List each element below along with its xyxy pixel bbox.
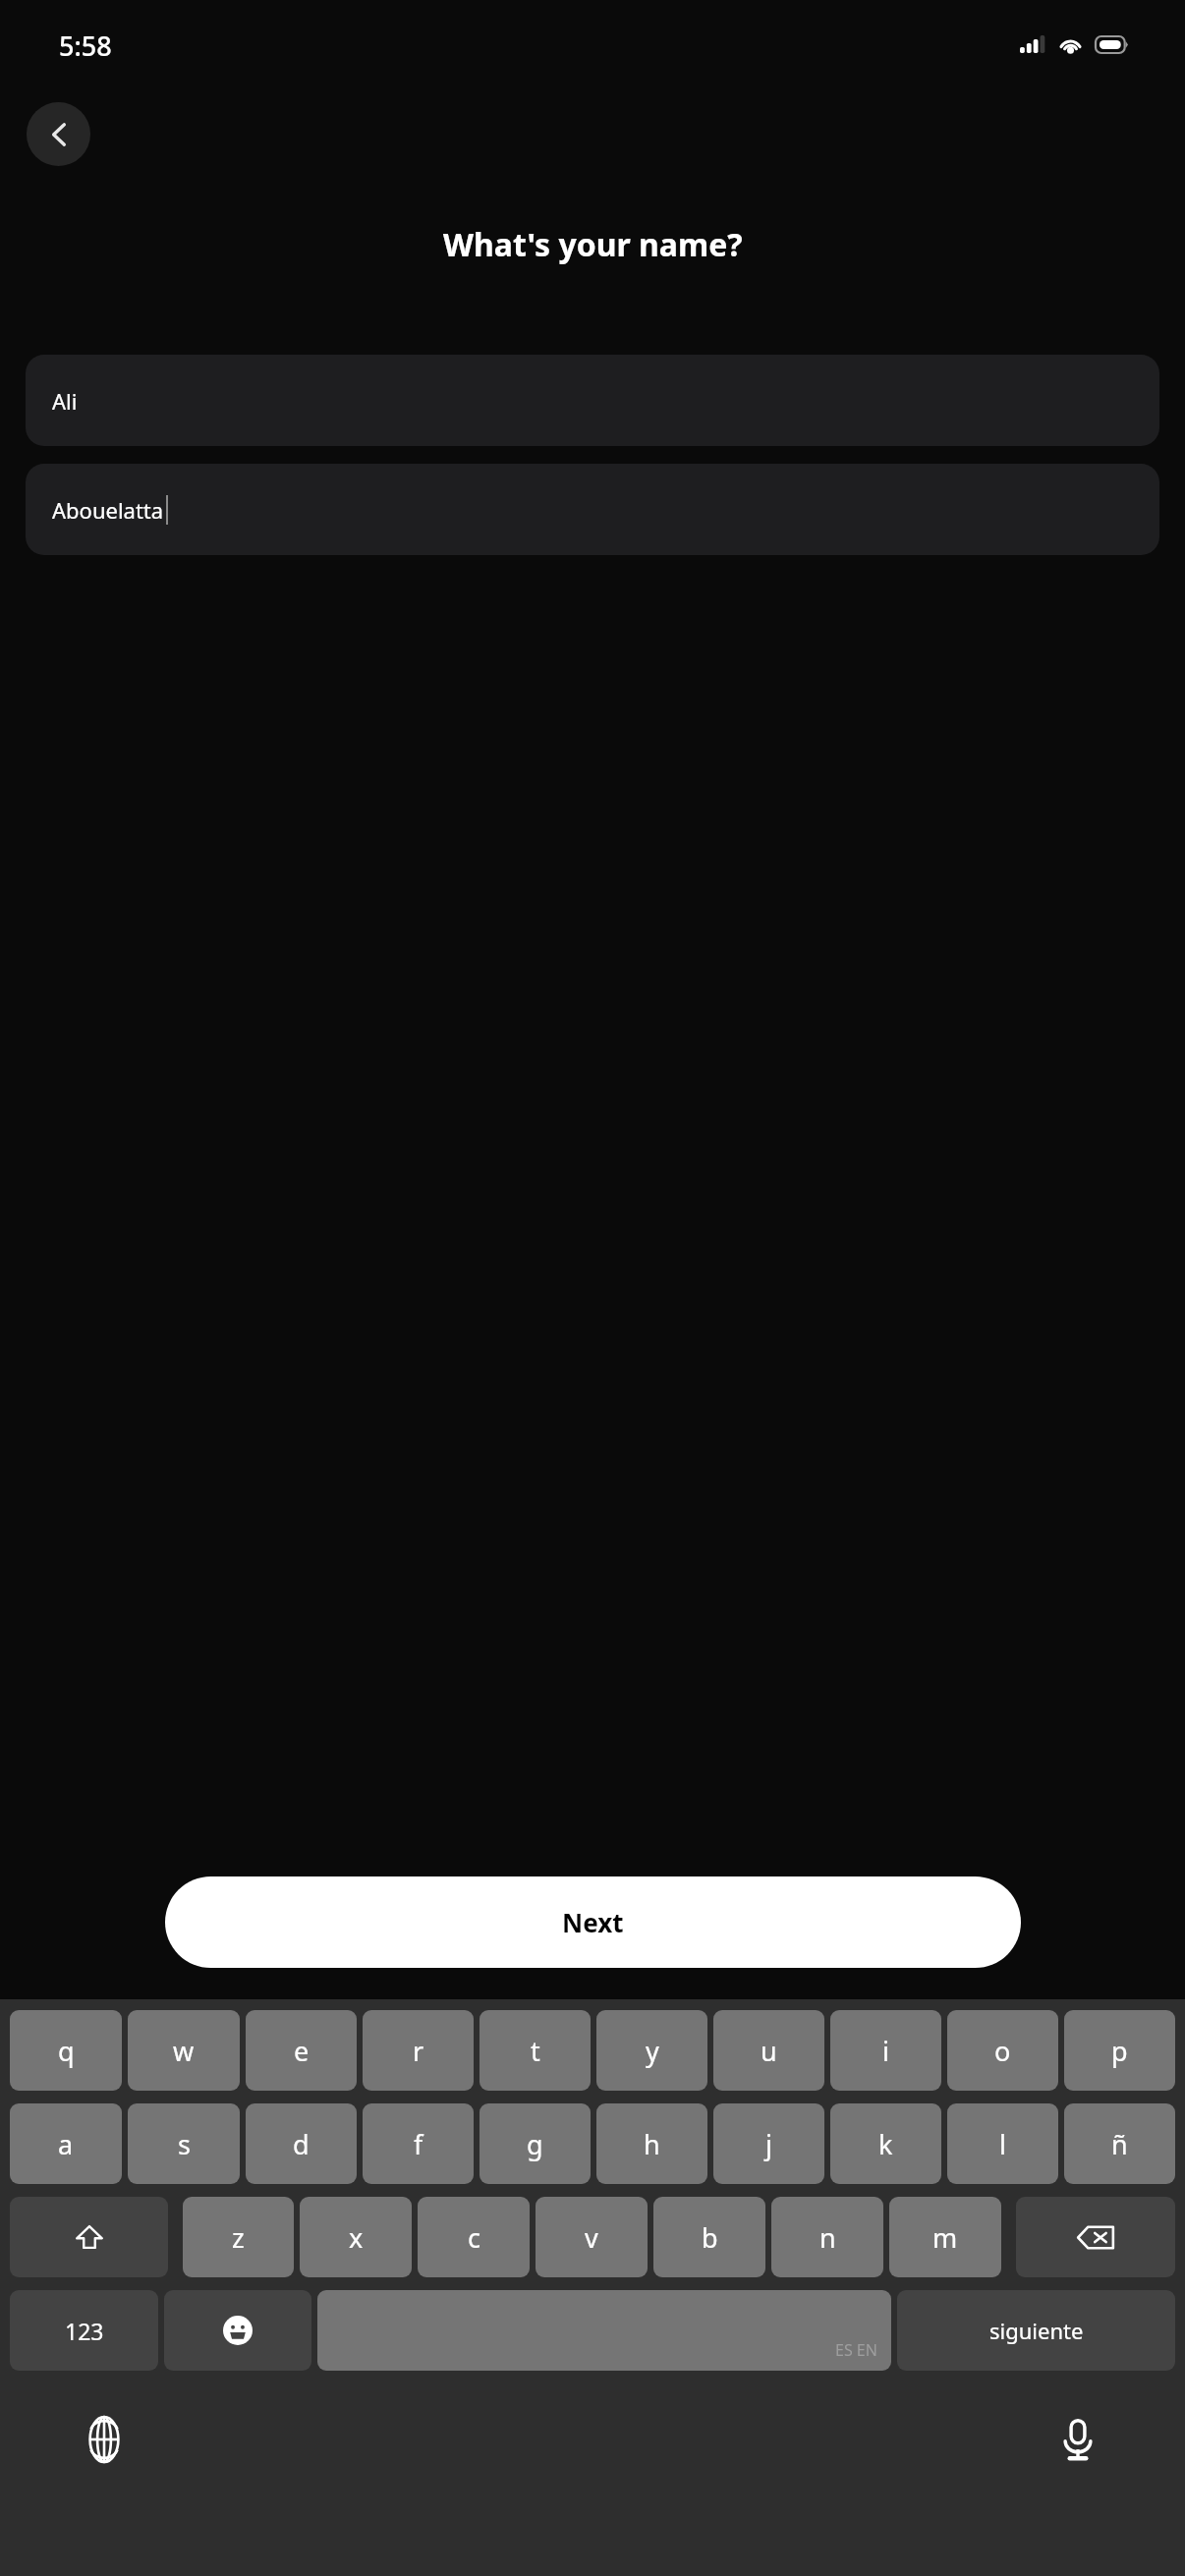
button[interactable]: b (653, 2197, 765, 2277)
staticText: e (294, 2033, 310, 2069)
button[interactable]: siguiente (897, 2290, 1175, 2371)
button[interactable]: Emoji (164, 2290, 311, 2371)
staticText: q (58, 2033, 75, 2069)
staticText: m (932, 2219, 958, 2256)
button[interactable]: w (128, 2010, 240, 2091)
button[interactable]: p (1064, 2010, 1175, 2091)
staticText: z (232, 2219, 245, 2256)
staticText: s (178, 2126, 191, 2162)
button[interactable]: z (183, 2197, 294, 2277)
button[interactable]: x (300, 2197, 412, 2277)
staticText: f (414, 2126, 423, 2162)
staticText: b (702, 2219, 718, 2256)
staticText: w (173, 2033, 195, 2069)
staticText: ñ (1111, 2126, 1128, 2162)
staticText: 5:58 (59, 28, 112, 64)
staticText: Abouelatta (52, 495, 164, 525)
button[interactable]: j (713, 2103, 824, 2184)
button[interactable]: Backspace (1016, 2197, 1175, 2277)
button[interactable]: i (830, 2010, 941, 2091)
button[interactable]: f (363, 2103, 474, 2184)
staticText: ES EN (835, 2339, 877, 2361)
staticText: i (882, 2033, 889, 2069)
button[interactable]: y (596, 2010, 707, 2091)
button[interactable]: ñ (1064, 2103, 1175, 2184)
staticText: Ali (52, 386, 78, 416)
staticText: k (878, 2126, 893, 2162)
button[interactable]: Change language (74, 2409, 135, 2470)
button[interactable]: r (363, 2010, 474, 2091)
staticText: y (646, 2033, 659, 2069)
button[interactable]: m (889, 2197, 1001, 2277)
button[interactable]: Shift (10, 2197, 168, 2277)
button[interactable]: k (830, 2103, 941, 2184)
staticText: h (644, 2126, 660, 2162)
staticText: siguiente (989, 2316, 1084, 2345)
button[interactable]: s (128, 2103, 240, 2184)
button[interactable]: Abouelatta (26, 464, 1159, 555)
staticText: j (765, 2126, 772, 2162)
button[interactable]: Back (27, 102, 90, 166)
button[interactable]: a (10, 2103, 122, 2184)
button[interactable]: d (246, 2103, 357, 2184)
staticText: t (531, 2033, 540, 2069)
staticText: r (413, 2033, 424, 2069)
button[interactable]: c (418, 2197, 530, 2277)
staticText: What's your name? (443, 223, 743, 266)
button[interactable]: q (10, 2010, 122, 2091)
staticText: c (468, 2219, 480, 2256)
button[interactable]: v (536, 2197, 648, 2277)
staticText: a (58, 2126, 74, 2162)
staticText: g (527, 2126, 543, 2162)
button[interactable]: Space (317, 2290, 891, 2371)
button[interactable]: l (947, 2103, 1058, 2184)
button[interactable]: e (246, 2010, 357, 2091)
button[interactable]: Next (165, 1876, 1021, 1968)
staticText: d (293, 2126, 310, 2162)
staticText: 123 (65, 2316, 104, 2346)
staticText: x (349, 2219, 364, 2256)
staticText: Next (562, 1905, 624, 1939)
button[interactable]: n (771, 2197, 883, 2277)
staticText: u (761, 2033, 777, 2069)
staticText: n (819, 2219, 836, 2256)
staticText: p (1111, 2033, 1128, 2069)
staticText: l (999, 2126, 1006, 2162)
button[interactable]: o (947, 2010, 1058, 2091)
button[interactable]: Ali (26, 355, 1159, 446)
button[interactable]: h (596, 2103, 707, 2184)
staticText: v (585, 2219, 598, 2256)
button[interactable]: t (480, 2010, 591, 2091)
staticText: o (994, 2033, 1011, 2069)
button[interactable]: 123 (10, 2290, 158, 2371)
button[interactable]: g (480, 2103, 591, 2184)
button[interactable]: u (713, 2010, 824, 2091)
button[interactable]: Voice input (1047, 2409, 1108, 2470)
